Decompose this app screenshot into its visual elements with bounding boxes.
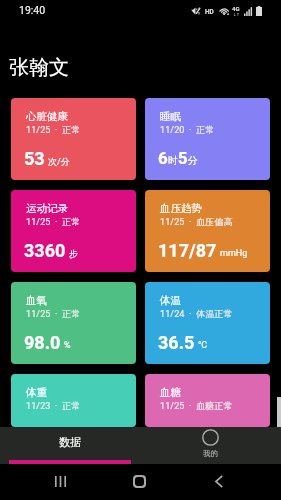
- staticText: 11/25 · 血糖正常: [160, 400, 233, 411]
- staticText: 张翰文: [9, 55, 69, 80]
- staticText: 11/25 · 血压偏高: [160, 216, 233, 227]
- staticText: HD: [205, 8, 214, 16]
- staticText: %: [64, 340, 71, 351]
- staticText: 117/87: [158, 240, 217, 261]
- staticText: 运动记录: [26, 202, 68, 215]
- button[interactable]: 数据: [0, 427, 140, 464]
- staticText: 11/25 · 正常: [26, 124, 81, 135]
- staticText: 体重: [26, 386, 47, 399]
- staticText: 11/24 · 体温正常: [160, 308, 233, 319]
- staticText: 19:40: [19, 4, 46, 16]
- staticText: 53: [24, 148, 45, 169]
- button[interactable]: 我的: [140, 427, 281, 464]
- staticText: °C: [198, 340, 208, 351]
- staticText: 我的: [203, 449, 218, 458]
- button[interactable]: 血压趋势: [145, 190, 270, 272]
- staticText: 睡眠: [160, 110, 181, 123]
- staticText: 心脏健康: [26, 110, 68, 123]
- staticText: 体温: [160, 294, 181, 307]
- staticText: 6时5分: [158, 148, 198, 168]
- staticText: 血压趋势: [160, 202, 202, 215]
- staticText: 11/25 · 正常: [26, 216, 81, 227]
- button[interactable]: 血氧: [11, 282, 136, 364]
- staticText: 3360: [24, 240, 66, 261]
- button[interactable]: Back: [202, 465, 235, 498]
- staticText: 11/23 · 正常: [26, 400, 81, 411]
- staticText: 4G: [232, 5, 240, 12]
- staticText: 36.5: [158, 332, 195, 353]
- button[interactable]: 睡眠: [145, 98, 270, 180]
- button[interactable]: 体重: [11, 374, 136, 427]
- button[interactable]: 运动记录: [11, 190, 136, 272]
- staticText: 血糖: [160, 386, 181, 399]
- staticText: 数据: [59, 435, 81, 449]
- staticText: 11/25 · 正常: [26, 308, 81, 319]
- staticText: 11/20 · 正常: [160, 124, 215, 135]
- staticText: ↓↑: [233, 12, 240, 17]
- button[interactable]: 血糖: [145, 374, 270, 427]
- staticText: 步: [69, 248, 78, 259]
- button[interactable]: 心脏健康: [11, 98, 136, 180]
- staticText: 次/分: [48, 156, 70, 167]
- staticText: 血氧: [26, 294, 47, 307]
- button[interactable]: Home: [123, 465, 156, 498]
- button[interactable]: 体温: [145, 282, 270, 364]
- button[interactable]: Recent apps: [44, 465, 77, 498]
- staticText: 98.0: [24, 332, 61, 353]
- staticText: mmHg: [220, 248, 248, 259]
